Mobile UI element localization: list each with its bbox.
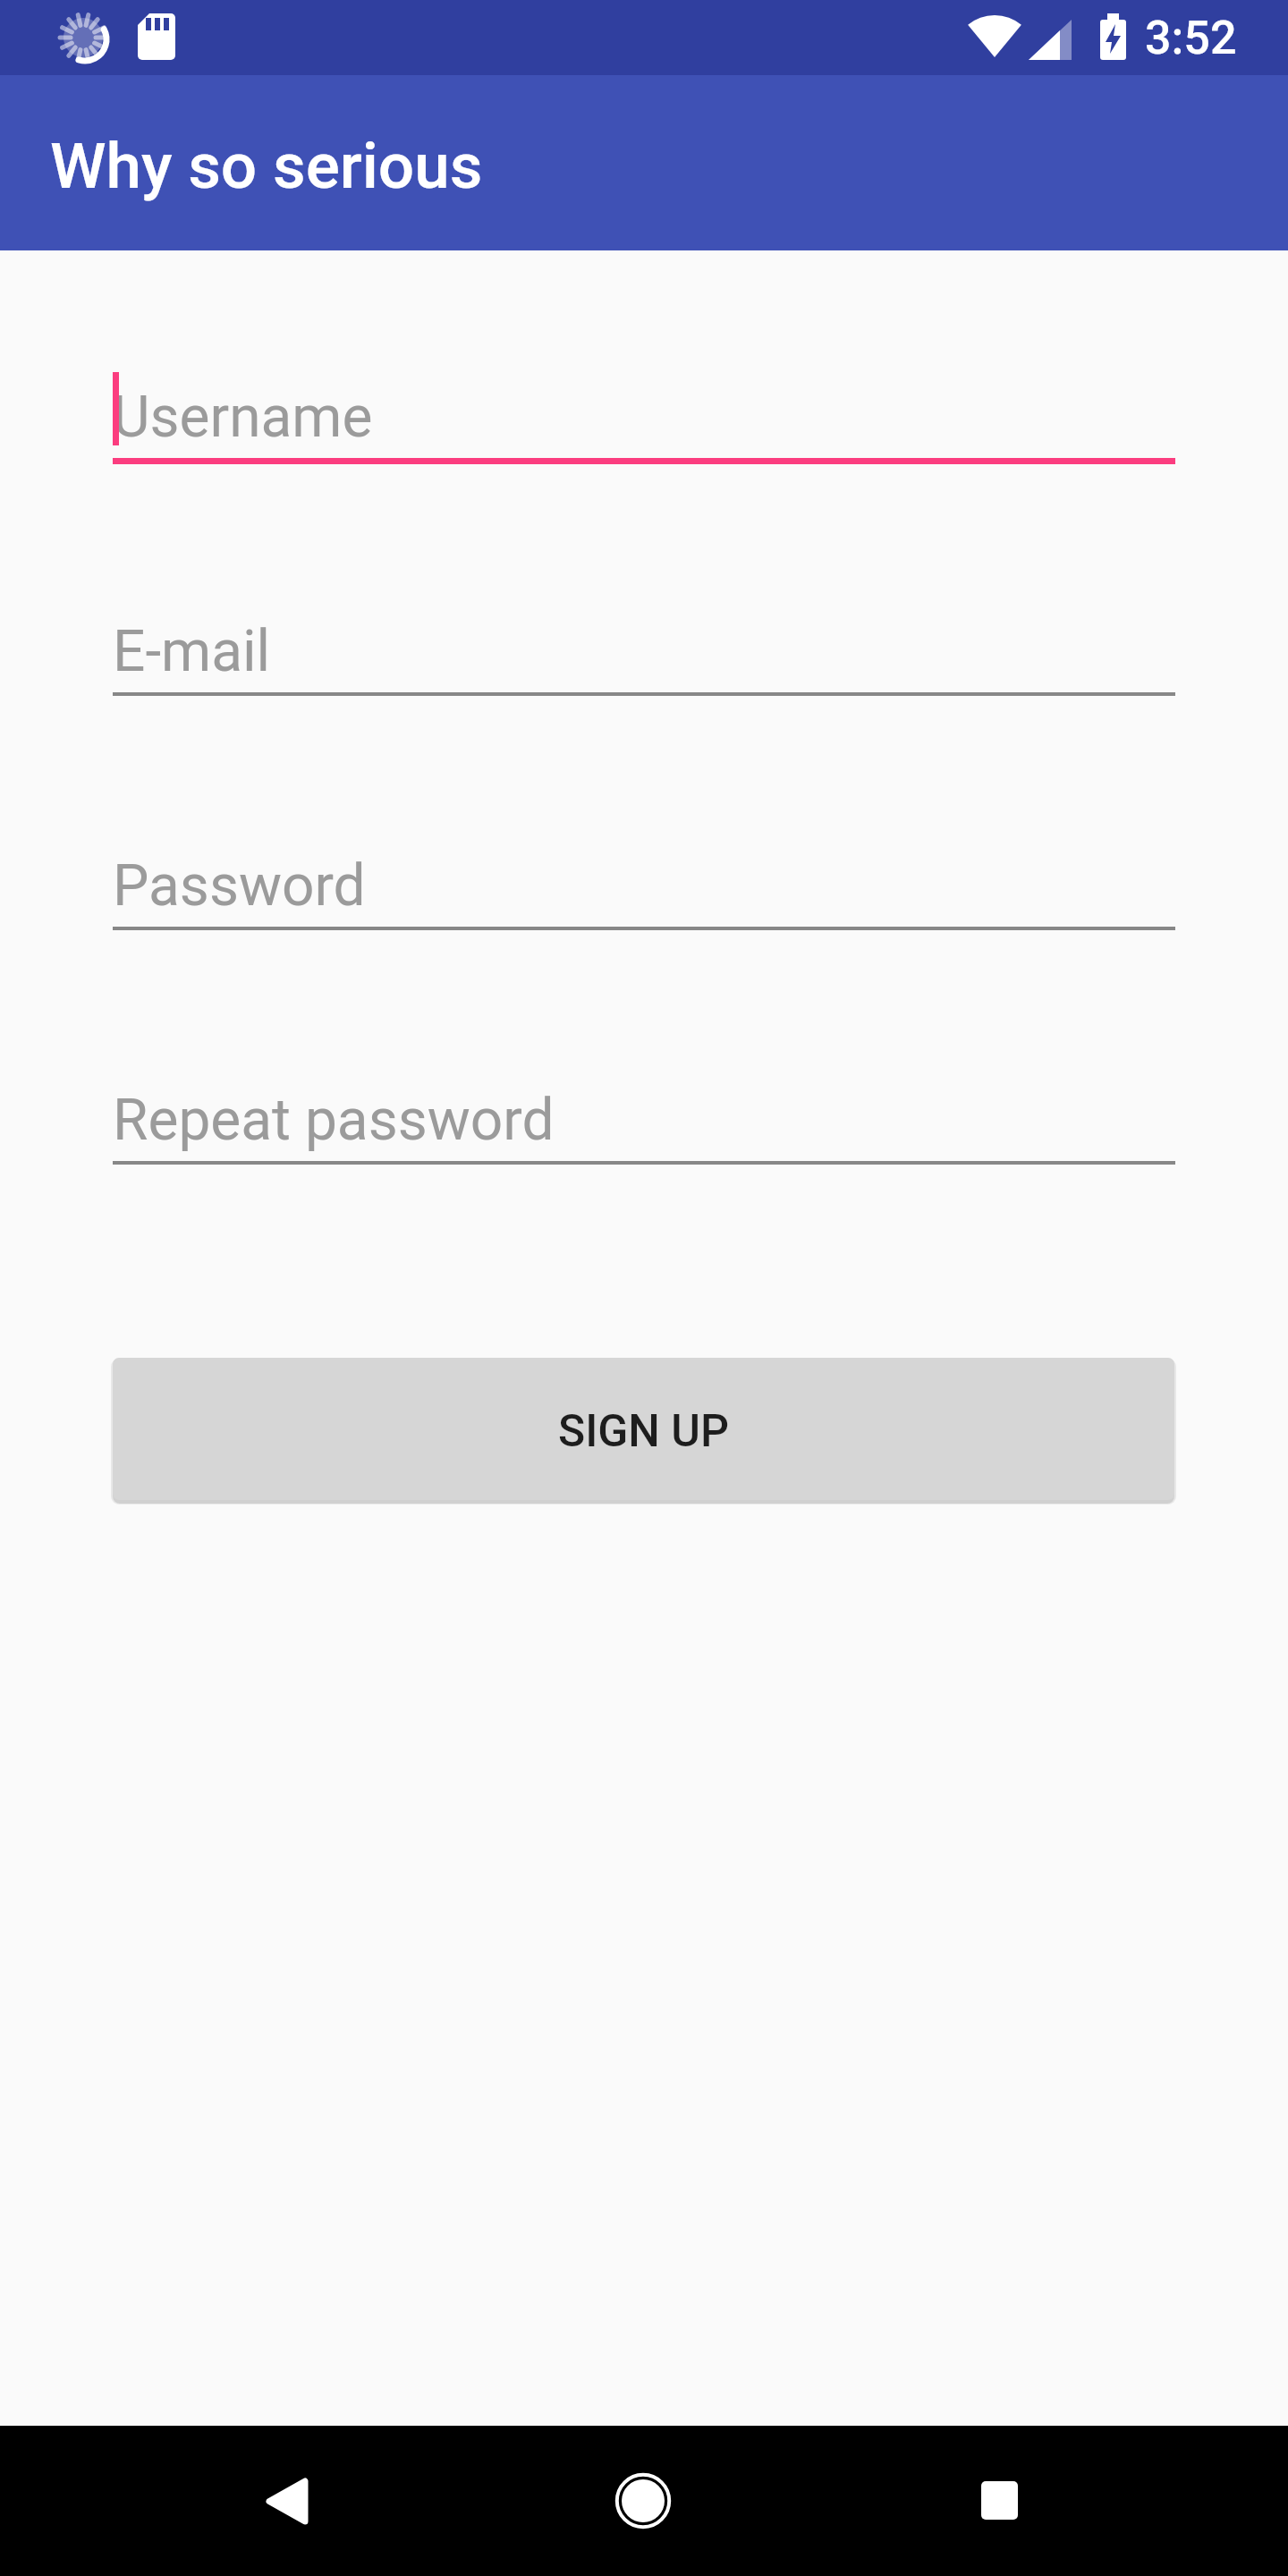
staticText: Password xyxy=(113,852,366,919)
button[interactable]: E-mail xyxy=(113,549,1175,696)
button[interactable]: Password xyxy=(113,784,1175,930)
button[interactable] xyxy=(568,2426,718,2576)
staticText: SIGN UP xyxy=(558,1405,729,1458)
button[interactable] xyxy=(212,2426,362,2576)
staticText: Why so serious xyxy=(50,129,483,203)
button[interactable]: Repeat password xyxy=(113,1018,1175,1165)
staticText: Username xyxy=(113,384,373,451)
button[interactable]: Username xyxy=(113,315,1175,464)
staticText: E-mail xyxy=(113,618,271,685)
staticText: Repeat password xyxy=(113,1087,555,1154)
button[interactable] xyxy=(924,2426,1074,2576)
staticText: 3:52 xyxy=(1145,11,1237,65)
button[interactable]: SIGN UP xyxy=(113,1358,1174,1500)
